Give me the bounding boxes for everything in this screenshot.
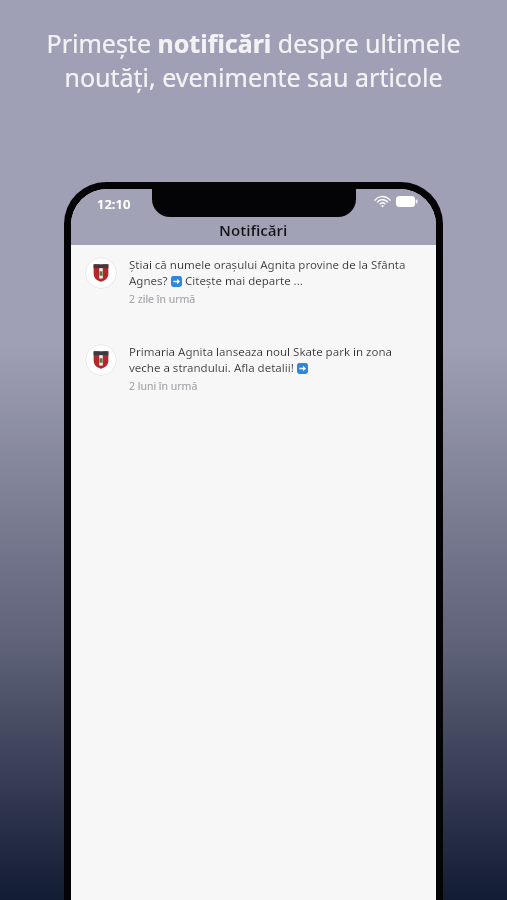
- button[interactable]: Primaria Agnita lanseaza noul Skate park…: [71, 332, 436, 401]
- staticText: Primește notificări despre ultimele nout…: [20, 26, 487, 94]
- staticText: Știai că numele orașului Agnita provine …: [129, 257, 406, 273]
- staticText: Primaria Agnita lanseaza noul Skate park…: [129, 344, 392, 360]
- staticText: Agnes?: [129, 273, 171, 289]
- staticText: Notificări: [219, 220, 288, 240]
- staticText: 2 zile în urmă: [129, 292, 196, 306]
- staticText: Citește mai departe ...: [182, 273, 303, 289]
- button[interactable]: Știai că numele orașului Agnita provine …: [71, 245, 436, 314]
- staticText: veche a strandului. Afla detalii!: [129, 360, 297, 376]
- staticText: 2 luni în urmă: [129, 379, 198, 393]
- staticText: 12:10: [97, 195, 131, 213]
